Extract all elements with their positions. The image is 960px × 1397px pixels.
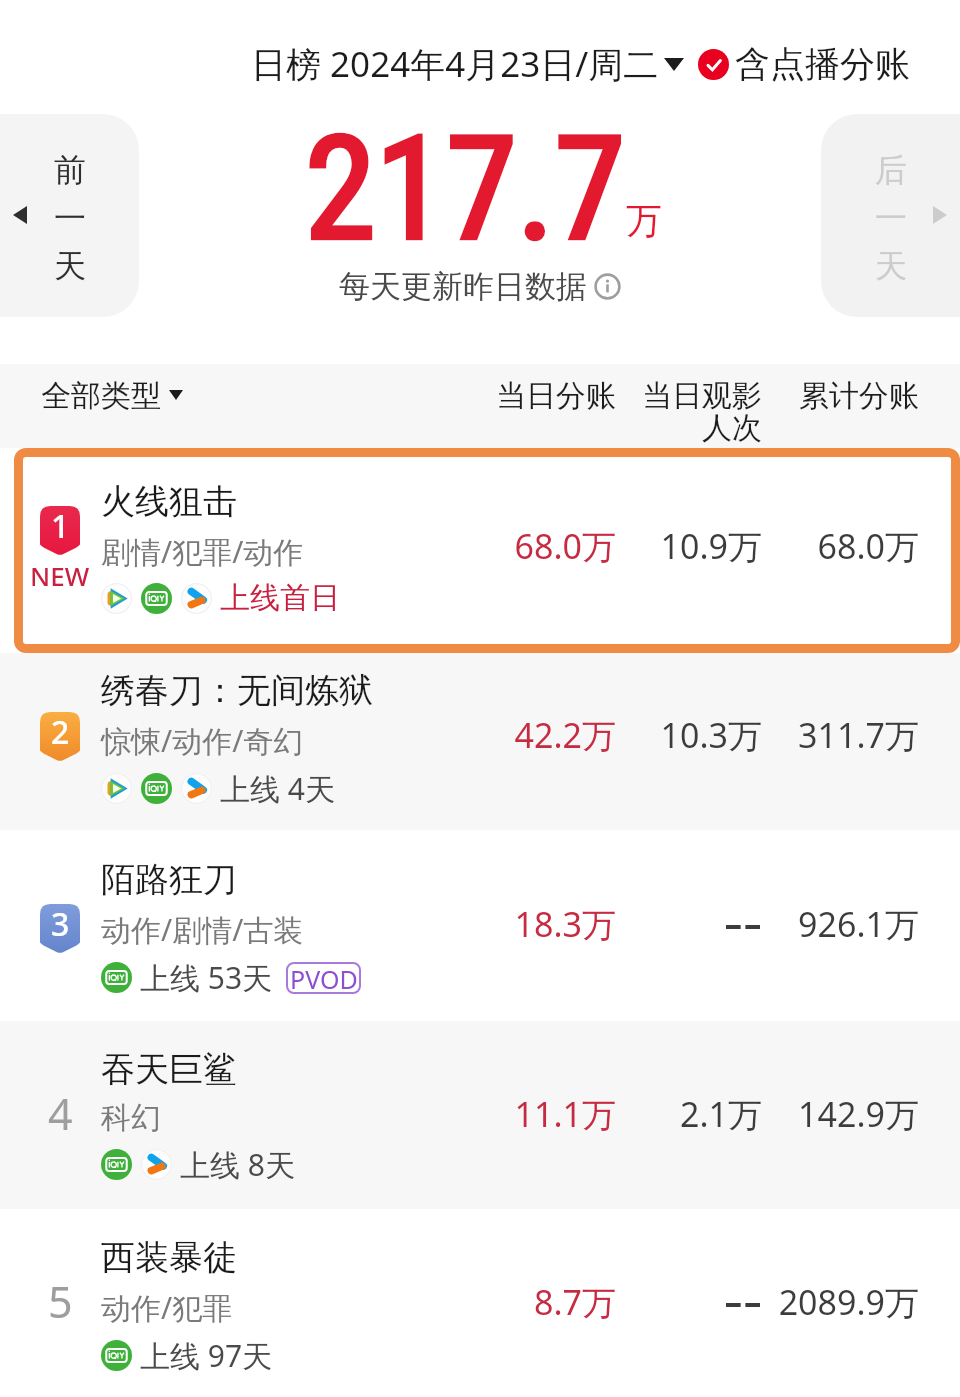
staticText: 4 — [48, 1084, 73, 1143]
staticText: 一 — [875, 198, 907, 238]
staticText: 10.9万 — [0, 523, 762, 569]
staticText: 一 — [54, 198, 86, 238]
staticText: 万 — [626, 198, 662, 243]
staticText: 上线 4天 — [220, 768, 335, 809]
staticText: 68.0万 — [0, 523, 919, 569]
staticText: 10.3万 — [0, 712, 762, 758]
button[interactable]: 后一天 — [821, 114, 960, 317]
staticText: 动作/犯罪 — [101, 1287, 233, 1328]
staticText: 上线 8天 — [180, 1144, 295, 1185]
button[interactable]: 1 — [0, 448, 960, 653]
staticText: 3 — [51, 902, 70, 946]
staticText: 926.1万 — [0, 901, 919, 947]
staticText: 惊悚/动作/奇幻 — [101, 720, 304, 761]
button[interactable]: 全部类型 — [41, 377, 183, 415]
staticText: 动作/剧情/古装 — [101, 909, 304, 950]
staticText: 天 — [875, 246, 907, 286]
staticText: 前 — [54, 150, 86, 190]
staticText: 5 — [48, 1272, 73, 1331]
staticText: NEW — [30, 558, 90, 593]
staticText: 11.1万 — [0, 1091, 616, 1137]
staticText: 当日观影 — [0, 377, 762, 415]
button[interactable]: 5 — [0, 1209, 960, 1397]
staticText: 剧情/犯罪/动作 — [101, 531, 304, 572]
button[interactable]: 日榜 2024年4月23日/周二 — [251, 40, 684, 88]
staticText: 每天更新昨日数据 — [339, 267, 587, 306]
staticText: 全部类型 — [41, 377, 161, 415]
staticText: 火线狙击 — [101, 480, 237, 523]
staticText: 18.3万 — [0, 901, 616, 947]
button[interactable]: 4 — [0, 1021, 960, 1209]
button[interactable]: 2 — [0, 653, 960, 830]
staticText: PVOD — [290, 962, 358, 994]
button[interactable]: 含点播分账 — [698, 42, 910, 86]
staticText: 后 — [875, 150, 907, 190]
staticText: 142.9万 — [0, 1091, 919, 1137]
staticText: 上线首日 — [220, 579, 340, 617]
staticText: 当日分账 — [0, 377, 616, 415]
staticText: 人次 — [0, 409, 762, 447]
staticText: 42.2万 — [0, 712, 616, 758]
button[interactable]: 3 — [0, 830, 960, 1021]
staticText: 217.7 — [305, 105, 626, 273]
staticText: 累计分账 — [0, 377, 919, 415]
staticText: 绣春刀：无间炼狱 — [101, 669, 373, 712]
staticText: 吞天巨鲨 — [101, 1048, 237, 1091]
button[interactable]: 数据说明 — [594, 273, 621, 300]
button[interactable]: 前一天 — [0, 114, 139, 317]
staticText: 陌路狂刀 — [101, 858, 237, 901]
staticText: 含点播分账 — [735, 42, 910, 86]
staticText: 2089.9万 — [0, 1279, 919, 1325]
staticText: 上线 97天 — [140, 1335, 273, 1376]
staticText: 2.1万 — [0, 1091, 762, 1137]
staticText: 2 — [51, 710, 70, 754]
staticText: 日榜 2024年4月23日/周二 — [251, 40, 659, 88]
staticText: 311.7万 — [0, 712, 919, 758]
staticText: 8.7万 — [0, 1279, 616, 1325]
staticText: 西装暴徒 — [101, 1236, 237, 1279]
staticText: 1 — [51, 504, 70, 548]
staticText: 科幻 — [101, 1099, 161, 1137]
staticText: 68.0万 — [0, 523, 616, 569]
staticText: 上线 53天 — [140, 957, 273, 998]
staticText: 天 — [54, 246, 86, 286]
